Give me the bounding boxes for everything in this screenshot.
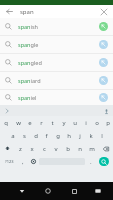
staticText: spangled [18, 59, 99, 66]
button[interactable]: a [7, 129, 19, 142]
staticText: ?123 [5, 159, 14, 164]
button[interactable]: y [58, 116, 69, 129]
button[interactable]: spaniard [0, 72, 113, 89]
staticText: spangle [18, 41, 99, 48]
staticText: b [66, 145, 70, 153]
button[interactable]: , [18, 155, 28, 168]
button[interactable]: Keyboard settings [28, 155, 38, 168]
button[interactable]: b [62, 142, 74, 155]
button[interactable]: h [63, 129, 74, 142]
staticText: y [62, 119, 66, 127]
staticText: q [4, 119, 8, 127]
button[interactable]: Back [14, 182, 30, 200]
button[interactable]: Insert suggestion [99, 76, 108, 85]
staticText: i [85, 119, 87, 127]
button[interactable]: r [36, 116, 47, 129]
staticText: c [43, 145, 46, 153]
staticText: span [20, 8, 98, 16]
button[interactable]: u [69, 116, 80, 129]
staticText: t [51, 119, 54, 127]
staticText: l [101, 132, 103, 140]
button[interactable]: x [26, 142, 38, 155]
button[interactable]: Voice input [102, 107, 110, 115]
staticText: h [67, 132, 71, 140]
button[interactable]: s [19, 129, 30, 142]
button[interactable]: spangled [0, 54, 113, 71]
button[interactable]: Backspace [98, 142, 113, 155]
staticText: . [90, 158, 92, 166]
button[interactable]: Clear search [98, 6, 109, 17]
button[interactable]: spangle [0, 36, 113, 53]
staticText: e [28, 119, 32, 127]
button[interactable]: d [30, 129, 41, 142]
staticText: p [106, 119, 110, 127]
staticText: x [30, 145, 34, 153]
button[interactable]: . [86, 155, 95, 168]
button[interactable]: n [74, 142, 86, 155]
button[interactable]: Insert suggestion [99, 22, 108, 31]
staticText: spaniel [18, 94, 99, 101]
staticText: g [56, 132, 60, 140]
staticText: k [89, 132, 93, 140]
button[interactable]: q [0, 116, 12, 129]
staticText: v [54, 145, 58, 153]
button[interactable]: o [91, 116, 102, 129]
button[interactable]: z [14, 142, 26, 155]
button[interactable]: Search [99, 157, 109, 166]
button[interactable]: Switch keyboard [90, 182, 106, 200]
button[interactable]: w [12, 116, 24, 129]
button[interactable]: t [47, 116, 58, 129]
button[interactable]: Back [4, 6, 15, 17]
staticText: o [95, 119, 99, 127]
button[interactable]: j [74, 129, 85, 142]
button[interactable]: Shift [0, 142, 14, 155]
button[interactable]: spaniel [0, 90, 113, 105]
button[interactable]: k [85, 129, 96, 142]
button[interactable]: spanish [0, 18, 113, 35]
staticText: d [34, 132, 38, 140]
staticText: , [22, 158, 24, 166]
staticText: n [78, 145, 82, 153]
button[interactable]: Insert suggestion [99, 40, 108, 49]
staticText: u [73, 119, 77, 127]
staticText: spaniard [18, 77, 99, 84]
button[interactable]: More suggestions [3, 107, 11, 115]
button[interactable]: Insert suggestion [99, 58, 108, 67]
staticText: w [16, 119, 21, 127]
staticText: s [23, 132, 26, 140]
staticText: z [19, 145, 22, 153]
button[interactable]: p [102, 116, 113, 129]
button[interactable]: Insert suggestion [99, 93, 108, 102]
staticText: r [40, 119, 43, 127]
staticText: f [45, 132, 48, 140]
button[interactable]: m [86, 142, 98, 155]
button[interactable]: ?123 [0, 155, 18, 168]
button[interactable]: l [96, 129, 107, 142]
staticText: a [11, 132, 15, 140]
button[interactable]: c [38, 142, 50, 155]
staticText: spanish [18, 23, 99, 30]
button[interactable]: e [24, 116, 36, 129]
staticText: m [89, 145, 95, 153]
button[interactable]: i [80, 116, 91, 129]
button[interactable]: f [41, 129, 52, 142]
button[interactable]: Home [40, 182, 56, 200]
staticText: j [79, 132, 81, 140]
button[interactable]: g [52, 129, 63, 142]
button[interactable]: v [50, 142, 62, 155]
button[interactable]: Recent apps [66, 182, 82, 200]
